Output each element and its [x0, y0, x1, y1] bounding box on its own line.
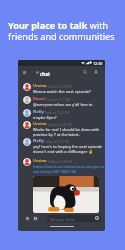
staticText: chat: [40, 71, 51, 77]
button[interactable]: Emoji: [94, 215, 99, 220]
staticText: Raoul: [33, 96, 45, 102]
staticText: doesn't end with a cliffhanger 🤞: [33, 149, 94, 154]
staticText: Works for me! I should be done with: [33, 127, 100, 132]
button[interactable]: Gift: [32, 215, 38, 221]
staticText: Today at 12:16 PM: [48, 123, 72, 127]
staticText: Message #chat: [50, 217, 75, 222]
staticText: Ursina: [33, 83, 47, 89]
staticText: oto-telegif-GIF-5802140: [33, 169, 77, 174]
staticText: 12:30: [93, 61, 103, 66]
staticText: Today at 12:14 PM: [48, 85, 72, 89]
staticText: Nelly: [33, 109, 44, 115]
staticText: maybe 8pm?: [33, 115, 57, 120]
button[interactable]: Menu: [20, 68, 29, 77]
button[interactable]: Members: [91, 67, 100, 76]
staticText: Ursina: [33, 121, 47, 127]
staticText: Today at 12:18 PM: [48, 160, 72, 164]
staticText: Today at 12:17 PM: [45, 140, 69, 144]
staticText: Today at 12:15 PM: [46, 98, 70, 102]
staticText: Wanna watch the next episode?: [33, 89, 91, 94]
staticText: Today at 12:15 PM: [45, 111, 69, 115]
button[interactable]: Add attachment: [24, 215, 30, 221]
button[interactable]: Search: [80, 67, 89, 76]
staticText: Nelly: [33, 138, 44, 144]
staticText: Your place to talk with friends and comm…: [8, 19, 115, 42]
staticText: yay! here's to hoping the next episode: [33, 144, 103, 149]
staticText: @everyone when are y'all free to watch?!: [33, 102, 105, 107]
staticText: practice by 7 at the latest.: [33, 132, 80, 137]
button[interactable]: Message #chat: [47, 215, 101, 222]
staticText: https://tenor.com/view/noot-penguin-n: [33, 164, 105, 169]
staticText: Ursina: [33, 158, 47, 164]
